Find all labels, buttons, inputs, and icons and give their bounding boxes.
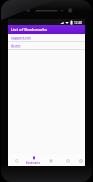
button[interactable]: Settings [42, 155, 59, 166]
button[interactable]: History [59, 155, 76, 166]
staticText: ib.me [11, 43, 21, 48]
button[interactable]: More [76, 155, 85, 166]
button[interactable]: List of Bookmarks [8, 25, 85, 34]
staticText: 12:30 [74, 21, 83, 25]
button[interactable]: ib.me [8, 42, 85, 49]
button[interactable]: Bookmarks [25, 155, 42, 166]
staticText: List of Bookmarks [11, 27, 47, 33]
button[interactable]: support.net [8, 34, 85, 41]
staticText: support.net [11, 35, 31, 40]
staticText: Bookmarks [26, 161, 41, 165]
button[interactable]: Search [8, 155, 25, 166]
